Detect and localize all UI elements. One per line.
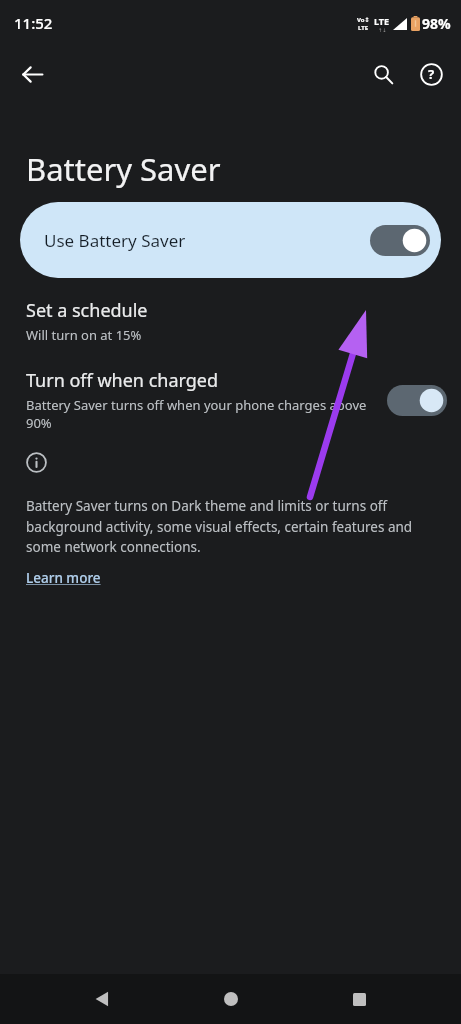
button[interactable]: Recent apps <box>332 974 386 1024</box>
staticText: Learn more <box>26 569 101 587</box>
button[interactable]: Home <box>204 974 258 1024</box>
staticText: Set a schedule <box>26 298 148 323</box>
button[interactable]: Search <box>359 50 407 98</box>
staticText: 98% <box>422 14 451 33</box>
staticText: Will turn on at 15% <box>26 326 142 344</box>
button[interactable]: Use Battery Saver <box>20 202 441 278</box>
staticText: Turn off when charged <box>26 368 219 393</box>
button[interactable]: Set a schedule <box>0 294 461 348</box>
button[interactable]: Help <box>407 50 455 98</box>
staticText: LTE <box>358 24 369 32</box>
staticText: ? <box>428 65 435 83</box>
staticText: Battery Saver turns on Dark theme and li… <box>26 497 437 556</box>
staticText: ↑↓ <box>378 27 387 33</box>
staticText: 11:52 <box>14 13 53 33</box>
button[interactable]: Back <box>8 50 56 98</box>
staticText: Battery Saver turns off when your phone … <box>26 396 379 432</box>
staticText: Battery Saver <box>26 148 221 190</box>
button[interactable]: Turn off when charged <box>0 368 461 432</box>
button[interactable]: Back <box>75 974 129 1024</box>
staticText: Vo↕ <box>357 16 370 24</box>
staticText: Use Battery Saver <box>44 229 186 252</box>
button[interactable]: Learn more <box>26 569 101 587</box>
staticText: LTE <box>374 15 390 27</box>
